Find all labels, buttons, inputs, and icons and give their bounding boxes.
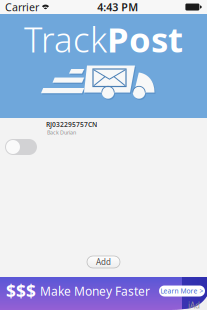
staticText: 4:43 PM	[97, 0, 138, 14]
button[interactable]: Add	[87, 256, 120, 268]
staticText: Post	[107, 16, 183, 62]
staticText: Back Durian	[47, 129, 76, 136]
staticText: Make Money Faster	[40, 283, 150, 299]
staticText: Carrier	[5, 0, 39, 14]
button[interactable]: Notifications toggle	[5, 139, 37, 155]
staticText: Learn More >	[160, 287, 203, 295]
staticText: Track	[24, 16, 107, 62]
staticText: RJ032295757CN	[46, 120, 97, 129]
staticText: Add	[96, 257, 111, 267]
staticText: $$$	[6, 279, 36, 302]
button[interactable]: Learn More >	[159, 285, 205, 296]
staticText: iAd	[188, 300, 200, 310]
